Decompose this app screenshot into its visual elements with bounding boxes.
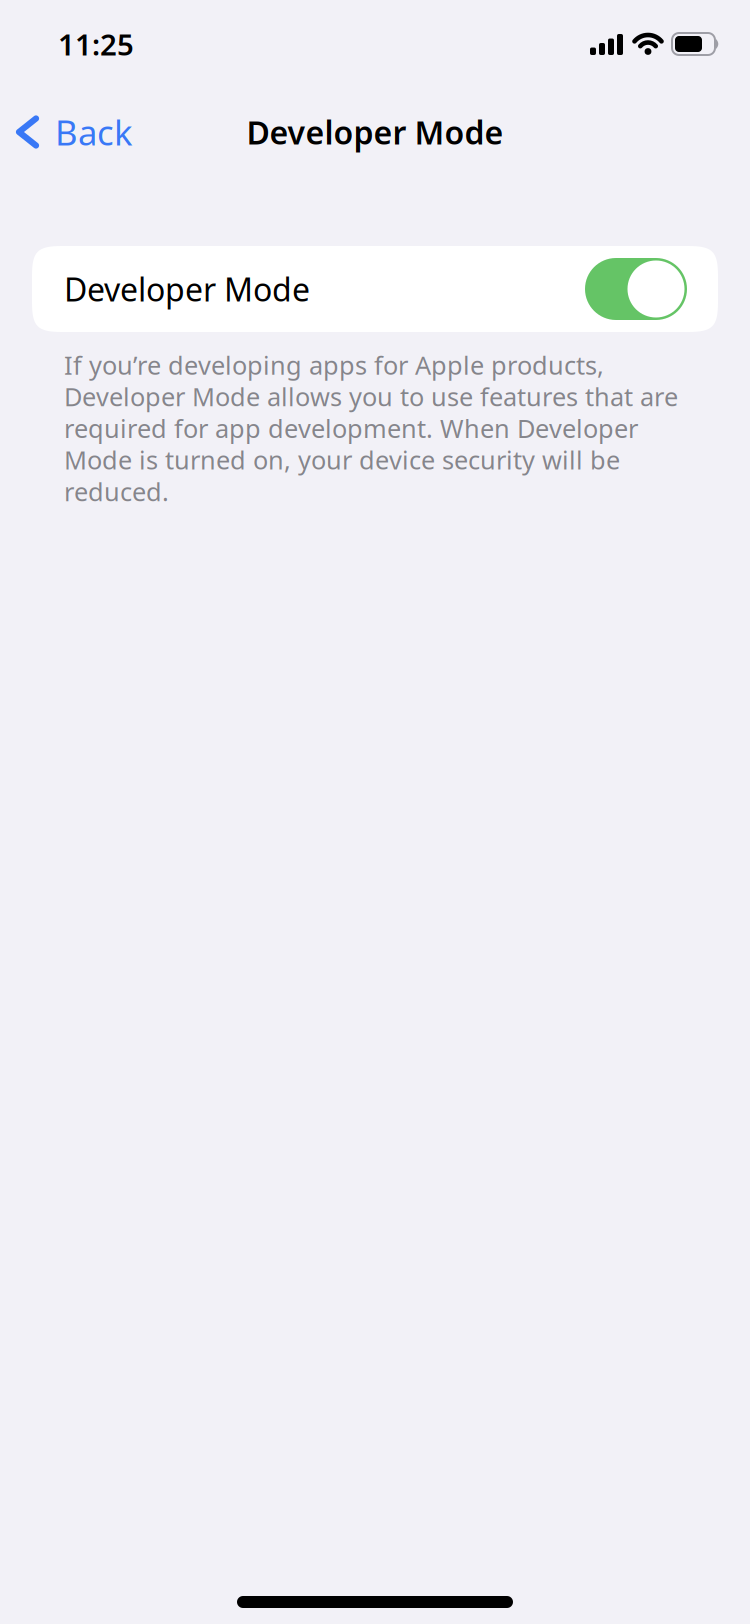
button[interactable]: Developer Mode [585, 258, 687, 320]
staticText: 11:25 [58, 24, 134, 63]
staticText: Developer Mode [246, 111, 503, 153]
staticText: Back [55, 109, 133, 155]
button[interactable]: Back [0, 109, 133, 155]
staticText: Developer Mode [64, 268, 310, 310]
staticText: Mode is turned on, your device security … [64, 443, 620, 476]
staticText: If you’re developing apps for Apple prod… [64, 348, 604, 382]
staticText: required for app development. When Devel… [64, 411, 638, 445]
staticText: reduced. [64, 475, 169, 508]
button[interactable]: Developer Mode [0, 246, 750, 332]
staticText: Developer Mode allows you to use feature… [64, 380, 678, 413]
